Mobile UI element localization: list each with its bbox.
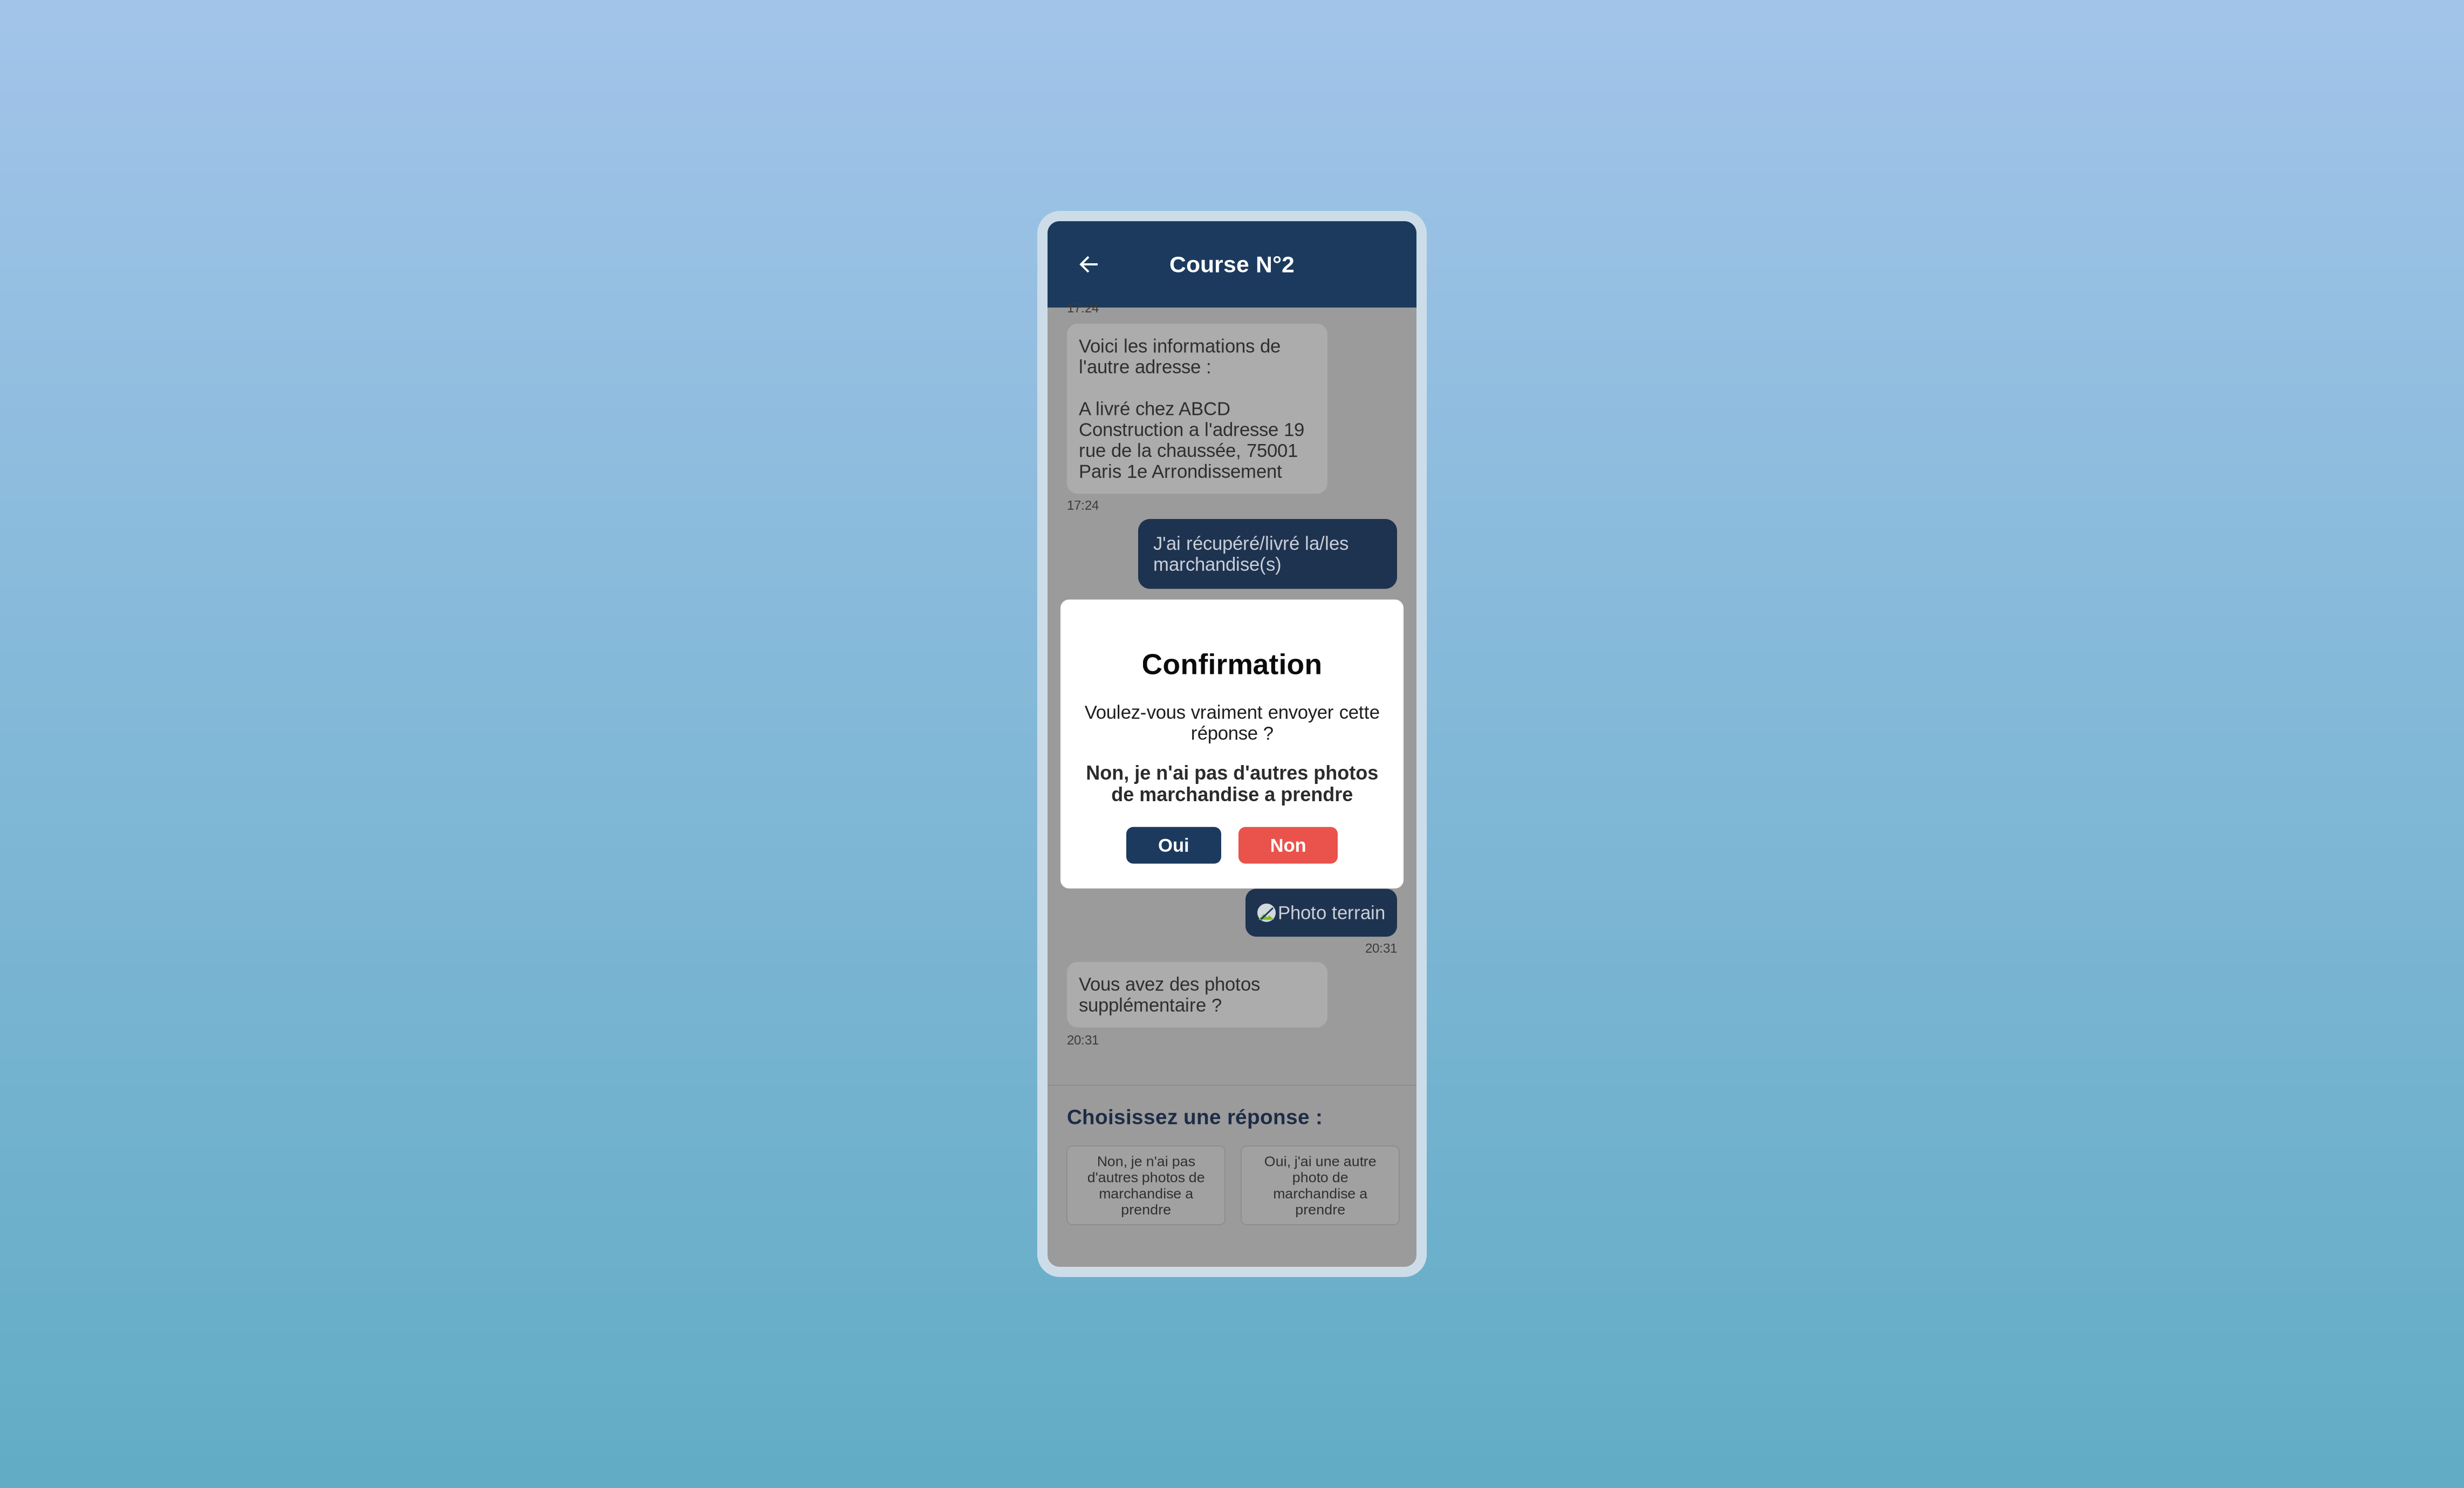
staticText: 17:24 xyxy=(1067,301,1099,315)
staticText: Course N°2 xyxy=(1169,252,1295,277)
staticText: 20:31 xyxy=(1365,941,1397,955)
staticText: Choisissez une réponse : xyxy=(1067,1105,1323,1129)
button[interactable]: Oui xyxy=(1126,827,1221,864)
staticText: Voici les informations de l'autre adress… xyxy=(1079,336,1304,482)
staticText: J'ai récupéré/livré la/les marchandise(s… xyxy=(1153,533,1349,575)
staticText: 17:24 xyxy=(1067,498,1099,512)
staticText: Non, je n'ai pas d'autres photos de marc… xyxy=(1086,762,1378,805)
staticText: 20:31 xyxy=(1067,1033,1099,1047)
staticText: Oui xyxy=(1158,835,1189,856)
staticText: Voulez-vous vraiment envoyer cette répon… xyxy=(1084,702,1380,744)
button[interactable]: Non xyxy=(1238,827,1338,864)
staticText: Vous avez des photos supplémentaire ? xyxy=(1079,974,1260,1016)
button[interactable]: Non, je n'ai pas d'autres photos de marc… xyxy=(1067,1146,1225,1225)
staticText: Oui, j'ai une autre photo de marchandise… xyxy=(1264,1153,1376,1217)
staticText: Non xyxy=(1270,835,1306,856)
button[interactable]: Back xyxy=(1048,221,1120,308)
staticText: Photo terrain xyxy=(1278,902,1385,923)
staticText: Confirmation xyxy=(1142,648,1322,680)
staticText: Non, je n'ai pas d'autres photos de marc… xyxy=(1087,1153,1205,1217)
button[interactable]: Oui, j'ai une autre photo de marchandise… xyxy=(1241,1146,1399,1225)
